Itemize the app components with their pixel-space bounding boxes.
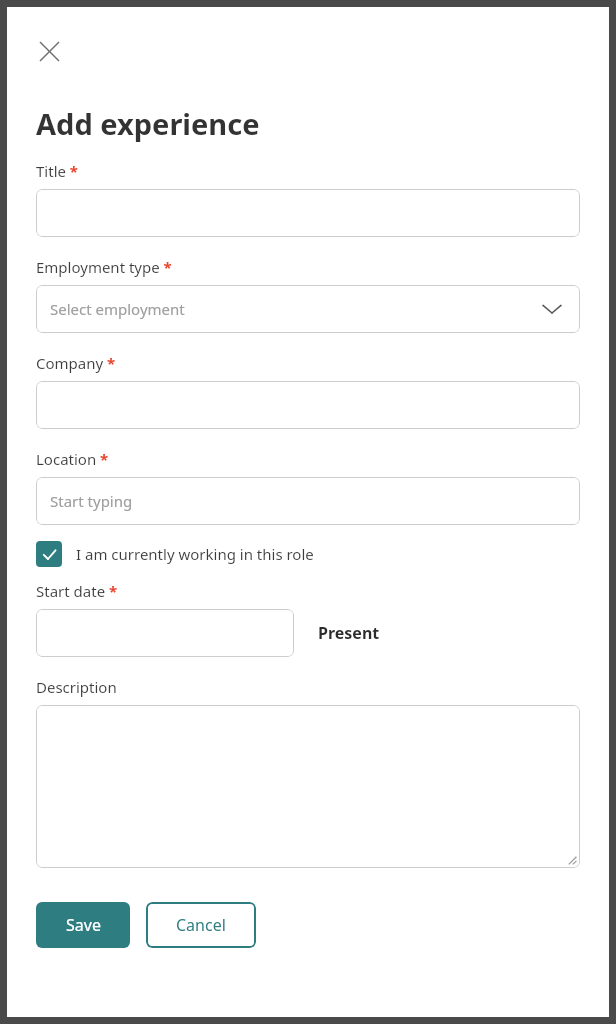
staticText: Select employment: [50, 299, 185, 319]
button[interactable]: Close: [29, 31, 69, 71]
staticText: Employment type *: [36, 257, 172, 277]
button[interactable]: [36, 381, 580, 429]
button[interactable]: Save: [36, 902, 130, 948]
staticText: Add experience: [36, 104, 260, 143]
button[interactable]: [36, 189, 580, 237]
button[interactable]: Start typing: [36, 477, 580, 525]
staticText: Save: [66, 914, 101, 936]
staticText: Description: [36, 677, 117, 697]
staticText: Title *: [36, 161, 78, 181]
staticText: Cancel: [176, 914, 226, 936]
button[interactable]: [36, 705, 580, 868]
staticText: Present: [318, 622, 380, 644]
button[interactable]: I am currently working in this role: [36, 541, 314, 567]
button[interactable]: Cancel: [146, 902, 256, 948]
button[interactable]: Select employment: [36, 285, 580, 333]
staticText: I am currently working in this role: [76, 544, 314, 564]
staticText: Company *: [36, 353, 116, 373]
staticText: Location *: [36, 449, 109, 469]
staticText: Start typing: [50, 491, 133, 511]
button[interactable]: [36, 609, 294, 657]
staticText: Start date *: [36, 581, 118, 601]
